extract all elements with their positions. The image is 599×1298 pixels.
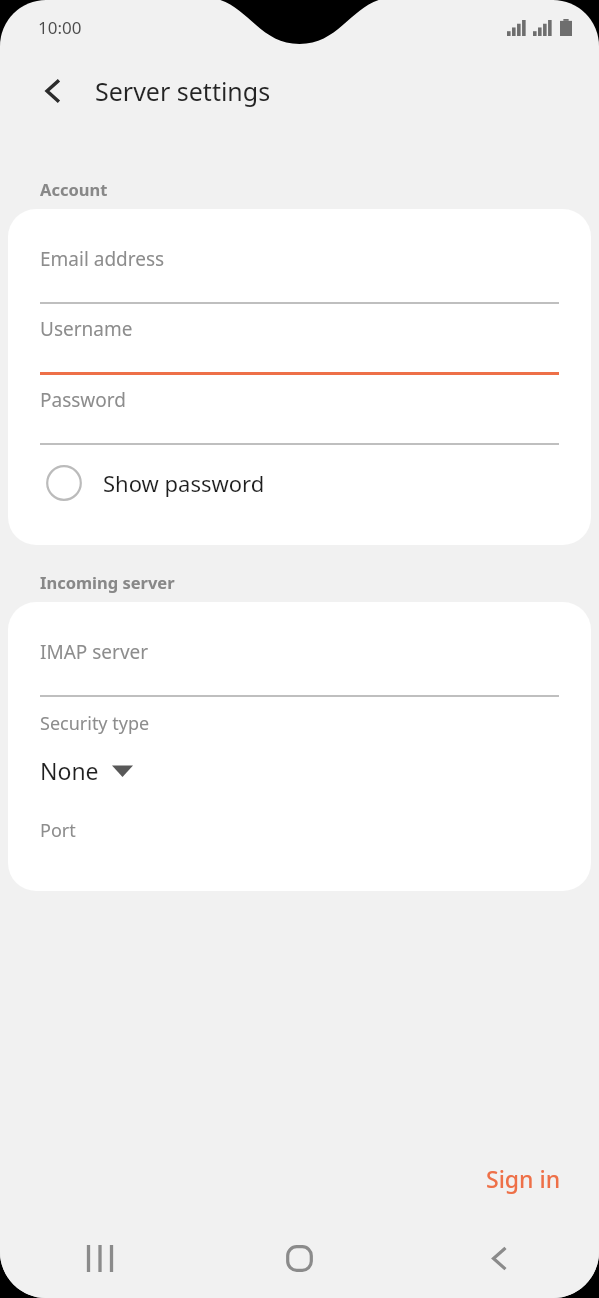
button[interactable]: Back [27,65,79,117]
button[interactable]: Show password [8,445,591,521]
staticText: Sign in [486,1163,561,1194]
staticText: Security type [40,711,150,736]
staticText: IMAP server [40,639,149,665]
button[interactable]: IMAP server [8,627,591,697]
staticText: Port [40,818,76,843]
button[interactable]: Home [199,1218,399,1298]
staticText: Account [40,178,108,200]
staticText: Username [40,316,133,342]
button[interactable]: Recents [0,1218,199,1298]
staticText: 10:00 [38,16,82,39]
staticText: Show password [103,468,265,498]
staticText: Email address [40,246,165,272]
button[interactable]: Username [8,304,591,375]
button[interactable]: Email address [8,234,591,304]
staticText: None [40,755,99,786]
button[interactable]: Back [399,1218,599,1298]
staticText: Incoming server [40,571,175,593]
staticText: Server settings [95,74,271,108]
button[interactable]: Password [8,375,591,445]
staticText: Password [40,387,126,413]
button[interactable]: Security type [8,711,591,786]
button[interactable]: Sign in [468,1151,579,1206]
